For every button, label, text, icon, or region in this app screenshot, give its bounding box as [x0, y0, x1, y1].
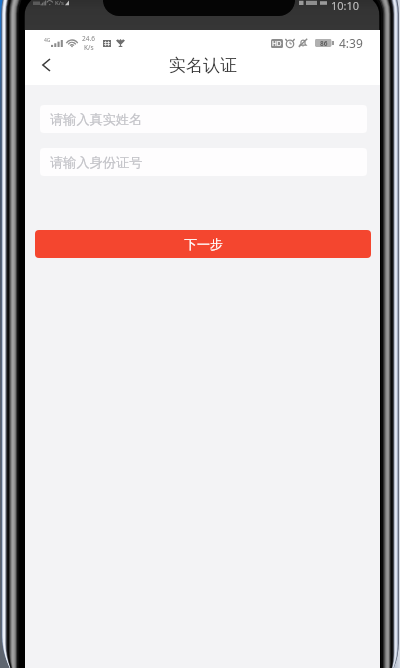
button[interactable]: 下一步 — [35, 230, 371, 258]
staticText: 4:39 — [339, 35, 363, 51]
staticText: 24.6 — [82, 34, 95, 43]
staticText: 4G — [44, 37, 51, 44]
button[interactable]: 请输入真实姓名 — [40, 105, 367, 133]
staticText: 10:10 — [331, 0, 360, 13]
staticText: HD — [272, 39, 282, 48]
staticText: 请输入身份证号 — [50, 154, 143, 171]
staticText: K/s — [84, 43, 94, 52]
staticText: 请输入真实姓名 — [50, 111, 143, 128]
button[interactable]: 请输入身份证号 — [40, 148, 367, 176]
staticText: 86 — [320, 39, 328, 47]
staticText: K/s — [55, 0, 64, 7]
staticText: 实名认证 — [169, 55, 237, 76]
staticText: 下一步 — [184, 236, 223, 252]
button[interactable]: Back — [30, 50, 62, 80]
